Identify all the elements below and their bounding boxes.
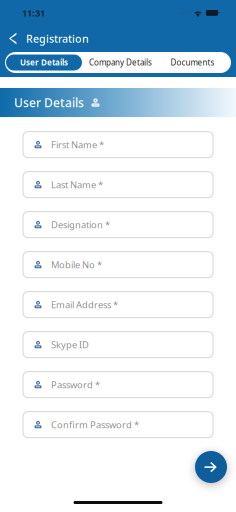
button[interactable]: Company Details [82, 54, 159, 70]
staticText: 11:31 [22, 7, 45, 19]
button[interactable]: Back [0, 27, 26, 49]
button[interactable]: Last Name * [23, 172, 213, 198]
staticText: User Details [14, 94, 84, 110]
staticText: Designation * [51, 218, 110, 231]
staticText: Registration [26, 31, 89, 46]
staticText: Company Details [89, 57, 152, 68]
staticText: Email Address * [51, 298, 118, 311]
staticText: Skype ID [51, 338, 89, 351]
staticText: Documents [170, 57, 214, 68]
button[interactable]: First Name * [23, 132, 213, 158]
button[interactable]: Documents [159, 54, 226, 70]
staticText: Confirm Password * [51, 418, 139, 431]
button[interactable]: Confirm Password * [23, 412, 213, 438]
button[interactable]: Email Address * [23, 292, 213, 318]
button[interactable]: User Details [6, 54, 82, 70]
button[interactable]: Designation * [23, 212, 213, 238]
staticText: Mobile No * [51, 258, 102, 271]
staticText: Password * [51, 378, 100, 391]
staticText: Last Name * [51, 178, 103, 191]
button[interactable]: Skype ID [23, 332, 213, 358]
button[interactable]: Password * [23, 372, 213, 398]
staticText: User Details [20, 57, 68, 68]
button[interactable]: Mobile No * [23, 252, 213, 278]
button[interactable]: Next [195, 451, 227, 483]
staticText: First Name * [51, 138, 104, 151]
